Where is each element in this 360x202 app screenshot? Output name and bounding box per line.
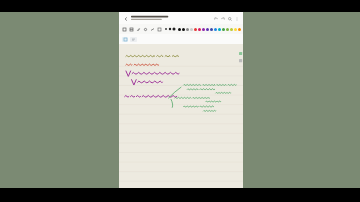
button[interactable]: Colour xyxy=(229,27,233,31)
button[interactable]: Size 2 xyxy=(168,27,172,31)
button[interactable]: Colour xyxy=(209,27,213,31)
button[interactable]: Colour xyxy=(221,27,225,31)
button[interactable]: Colour xyxy=(225,27,229,31)
button[interactable]: Page mode xyxy=(122,37,128,42)
button[interactable]: Colour xyxy=(213,27,217,31)
button[interactable]: Colour xyxy=(233,27,237,31)
button[interactable]: Search xyxy=(226,15,233,22)
button[interactable]: Tool 2 xyxy=(128,26,135,33)
button[interactable]: Colour xyxy=(205,27,209,31)
button[interactable]: Colour xyxy=(189,27,193,31)
button[interactable]: Colour xyxy=(237,27,241,31)
button[interactable]: Undo xyxy=(212,15,219,22)
button[interactable]: Colour xyxy=(197,27,201,31)
button[interactable]: Size 3 xyxy=(172,27,176,31)
button[interactable]: Template xyxy=(130,37,137,42)
button[interactable]: Colour xyxy=(193,27,197,31)
button[interactable]: Tool 6 xyxy=(156,26,163,33)
button[interactable]: Tool 1 xyxy=(121,26,128,33)
button[interactable]: Tool 5 xyxy=(149,26,156,33)
button[interactable]: Back xyxy=(122,15,129,22)
button[interactable] xyxy=(119,44,243,188)
button[interactable]: Colour xyxy=(181,27,185,31)
button[interactable]: Colour xyxy=(177,27,181,31)
button[interactable]: More xyxy=(233,15,240,22)
button[interactable]: Colour xyxy=(201,27,205,31)
button[interactable]: Colour xyxy=(217,27,221,31)
button[interactable]: Tool 3 xyxy=(135,26,142,33)
button[interactable]: Tool 4 xyxy=(142,26,149,33)
button[interactable]: Redo xyxy=(219,15,226,22)
button[interactable]: Colour xyxy=(185,27,189,31)
button[interactable] xyxy=(131,15,212,22)
button[interactable]: Size 1 xyxy=(164,27,168,31)
